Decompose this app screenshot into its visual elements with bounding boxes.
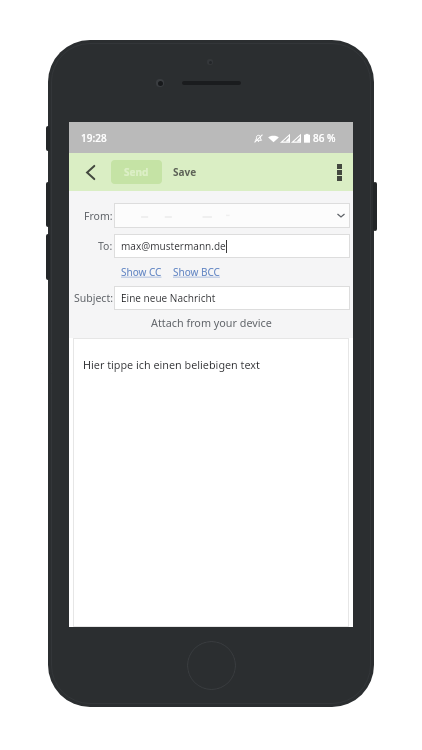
button[interactable] xyxy=(114,203,350,228)
staticText: To: xyxy=(98,239,113,253)
button[interactable]: Attach from your device xyxy=(69,312,353,333)
button[interactable]: More options xyxy=(326,156,352,188)
staticText: From: xyxy=(84,209,113,223)
button[interactable]: Hier tippe ich einen beliebigen text xyxy=(73,338,349,627)
staticText: Show CC xyxy=(121,265,162,279)
staticText: Attach from your device xyxy=(151,315,272,330)
button[interactable]: Show CC xyxy=(119,263,164,281)
staticText: Hier tippe ich einen beliebigen text xyxy=(83,357,260,372)
staticText: Save xyxy=(173,165,197,179)
staticText: Send xyxy=(124,165,149,179)
staticText: max@mustermann.de xyxy=(121,239,226,253)
button[interactable]: Back xyxy=(76,157,104,187)
staticText: 19:28 xyxy=(81,131,107,145)
staticText: 86 % xyxy=(313,131,336,145)
button[interactable]: Save xyxy=(171,160,199,184)
staticText: Subject: xyxy=(74,291,113,305)
staticText: Show BCC xyxy=(173,265,220,279)
button[interactable]: Send xyxy=(111,160,162,184)
button[interactable]: Show BCC xyxy=(171,263,222,281)
button[interactable]: Eine neue Nachricht xyxy=(114,286,350,310)
button[interactable]: max@mustermann.de xyxy=(114,234,350,258)
staticText: Eine neue Nachricht xyxy=(121,291,216,305)
